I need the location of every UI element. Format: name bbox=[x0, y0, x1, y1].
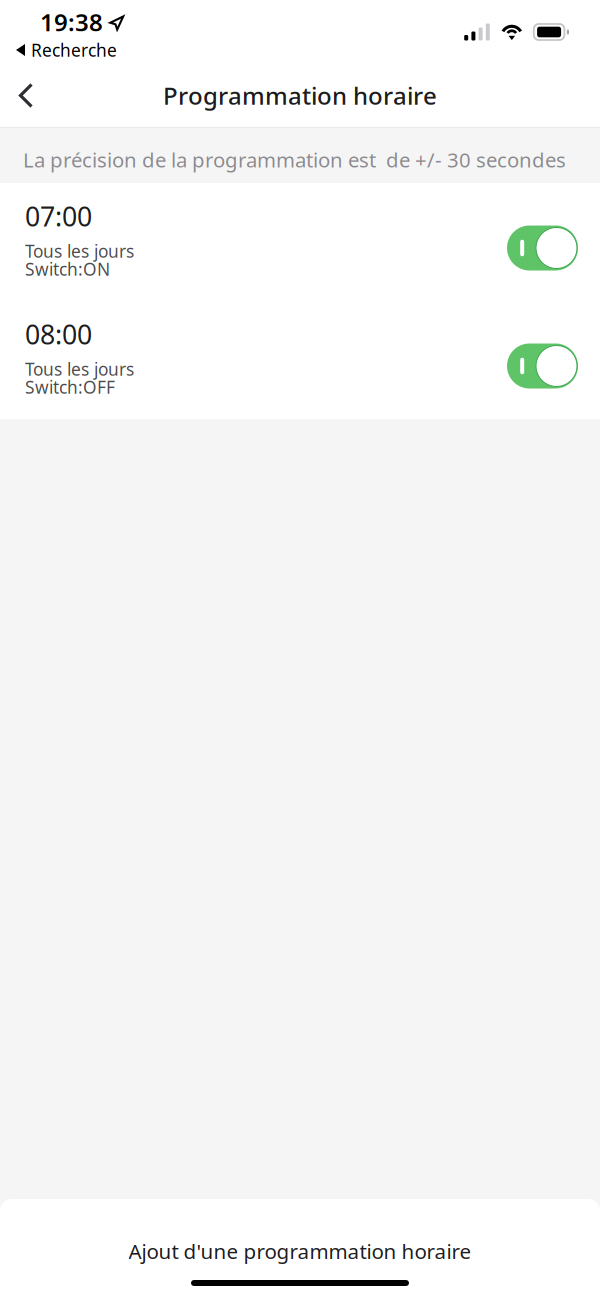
staticText: Programmation horaire bbox=[163, 80, 437, 111]
staticText: Switch:ON bbox=[25, 257, 110, 280]
staticText: Tous les jours bbox=[25, 239, 134, 262]
staticText: Recherche bbox=[31, 38, 117, 61]
button[interactable]: Ajout d'une programmation horaire bbox=[0, 1199, 600, 1282]
button[interactable]: Back bbox=[0, 64, 52, 127]
button[interactable]: Recherche bbox=[0, 36, 117, 64]
staticText: Switch:OFF bbox=[25, 375, 115, 398]
staticText: 07:00 bbox=[25, 198, 92, 234]
staticText: La précision de la programmation est de … bbox=[23, 146, 566, 173]
staticText: 08:00 bbox=[25, 316, 92, 352]
staticText: 19:38 bbox=[40, 6, 103, 38]
button[interactable]: 07:00 bbox=[0, 183, 600, 301]
button[interactable]: 08:00 bbox=[0, 301, 600, 419]
staticText: Tous les jours bbox=[25, 357, 134, 380]
staticText: Ajout d'une programmation horaire bbox=[128, 1237, 471, 1265]
